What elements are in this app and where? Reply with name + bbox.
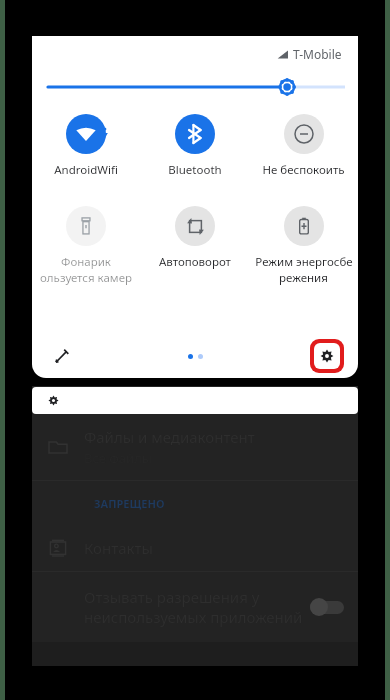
staticText: AndroidWifi: [54, 162, 118, 178]
button[interactable]: [32, 387, 358, 414]
staticText: Bluetooth: [168, 162, 222, 178]
staticText: ЗАПРЕЩЕНО: [94, 496, 165, 511]
button[interactable]: Автоповорот: [140, 200, 249, 300]
button[interactable]: Не беспокоить: [249, 108, 358, 200]
button[interactable]: Bluetooth: [140, 108, 249, 200]
button[interactable]: Toggle: [310, 596, 344, 618]
staticText: T-Mobile: [293, 46, 342, 62]
button[interactable]: Settings: [314, 343, 340, 369]
button[interactable]: Отзывать разрешения у: [32, 572, 358, 642]
button[interactable]: AndroidWifi: [32, 108, 140, 200]
button[interactable]: Фонарик: [32, 200, 140, 300]
staticText: Не беспокоить: [262, 162, 345, 178]
button[interactable]: Edit tiles: [46, 341, 76, 371]
staticText: режения: [279, 270, 328, 286]
button[interactable]: Режим энергосбе: [249, 200, 358, 300]
button[interactable]: [32, 72, 358, 102]
staticText: Режим энергосбе: [255, 254, 353, 270]
staticText: Автоповорот: [159, 254, 231, 270]
staticText: Фонарик: [61, 254, 111, 270]
staticText: ользуется камер: [40, 270, 132, 286]
